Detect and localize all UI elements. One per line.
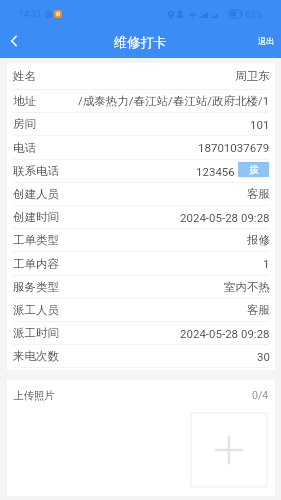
staticText: 周卫东 xyxy=(235,69,270,83)
staticText: 室内不热 xyxy=(224,280,270,294)
staticText: 工单类型 xyxy=(13,233,59,247)
staticText: 派工时间 xyxy=(13,326,59,340)
staticText: 1 xyxy=(263,257,270,270)
staticText: 客服 xyxy=(247,187,270,201)
button[interactable]: 派工人员 xyxy=(7,299,275,321)
button[interactable]: 服务类型 xyxy=(7,276,275,298)
staticText: 退出 xyxy=(258,36,275,46)
staticText: 2024-05-28 09:28 xyxy=(180,211,270,224)
button[interactable]: Add photo xyxy=(191,413,267,487)
staticText: 电话 xyxy=(13,141,36,155)
button[interactable]: 电话 xyxy=(7,136,275,159)
staticText: 联系电话 xyxy=(13,164,59,178)
staticText: 63% xyxy=(245,9,263,20)
button[interactable]: 派工时间 xyxy=(7,322,275,344)
button[interactable]: 姓名 xyxy=(7,63,275,89)
button[interactable]: 联系电话 xyxy=(7,160,275,182)
staticText: 18701037679 xyxy=(198,141,270,154)
button[interactable]: 工单类型 xyxy=(7,229,275,251)
button[interactable]: 创建时间 xyxy=(7,206,275,228)
staticText: 维修打卡 xyxy=(114,34,167,51)
staticText: 30 xyxy=(257,350,270,363)
button[interactable]: 房间 xyxy=(7,113,275,135)
staticText: 客服 xyxy=(247,303,270,317)
staticText: 姓名 xyxy=(13,69,36,83)
staticText: 0/4 xyxy=(252,389,269,401)
staticText: 上传照片 xyxy=(13,389,55,402)
staticText: 拨 xyxy=(249,163,259,176)
button[interactable]: 创建人员 xyxy=(7,183,275,205)
staticText: 创建人员 xyxy=(13,187,59,201)
staticText: /成泰热力/春江站/春江站/政府北楼/1 xyxy=(78,94,270,108)
staticText: 来电次数 xyxy=(13,349,59,363)
button[interactable]: 工单内容 xyxy=(7,252,275,275)
button[interactable]: 来电次数 xyxy=(7,345,275,367)
button[interactable]: 地址 xyxy=(7,90,275,112)
staticText: 2024-05-28 09:28 xyxy=(180,327,270,340)
button[interactable]: 拨 xyxy=(238,162,269,177)
button[interactable]: 退出 xyxy=(252,24,281,58)
staticText: 创建时间 xyxy=(13,210,59,224)
staticText: 14:31 xyxy=(19,9,42,20)
staticText: 服务类型 xyxy=(13,280,59,294)
staticText: 房间 xyxy=(13,117,36,131)
staticText: 工单内容 xyxy=(13,257,59,271)
button[interactable]: Back xyxy=(0,24,27,58)
staticText: 报修 xyxy=(247,233,270,247)
staticText: 派工人员 xyxy=(13,303,59,317)
staticText: 101 xyxy=(250,118,270,131)
staticText: 地址 xyxy=(13,94,36,108)
staticText: 123456 xyxy=(196,165,235,178)
